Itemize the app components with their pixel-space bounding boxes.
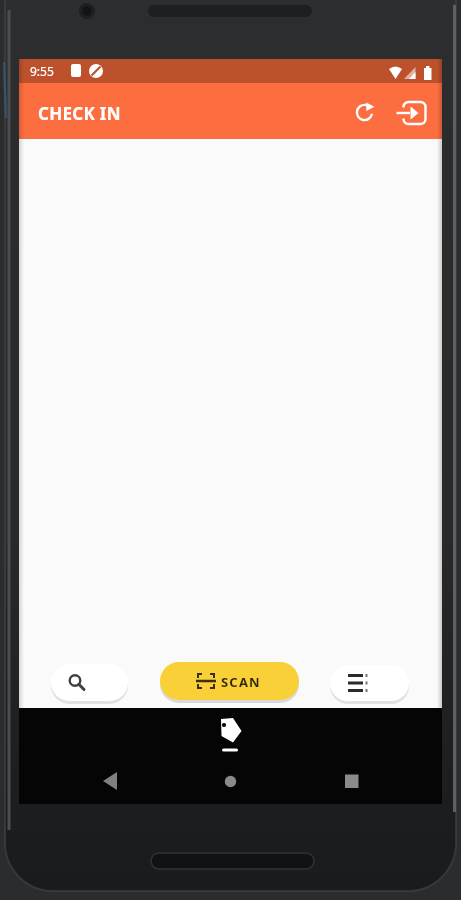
button[interactable]: SCAN xyxy=(160,662,299,700)
button[interactable] xyxy=(390,90,435,135)
button[interactable] xyxy=(51,664,128,701)
staticText: CHECK IN xyxy=(38,102,121,125)
button[interactable] xyxy=(321,758,381,804)
button[interactable] xyxy=(205,712,255,756)
staticText: SCAN xyxy=(221,673,261,691)
button[interactable] xyxy=(330,665,409,701)
button[interactable] xyxy=(79,758,139,804)
button[interactable] xyxy=(342,90,387,135)
staticText: 9:55 xyxy=(30,63,54,79)
button[interactable] xyxy=(200,758,260,804)
